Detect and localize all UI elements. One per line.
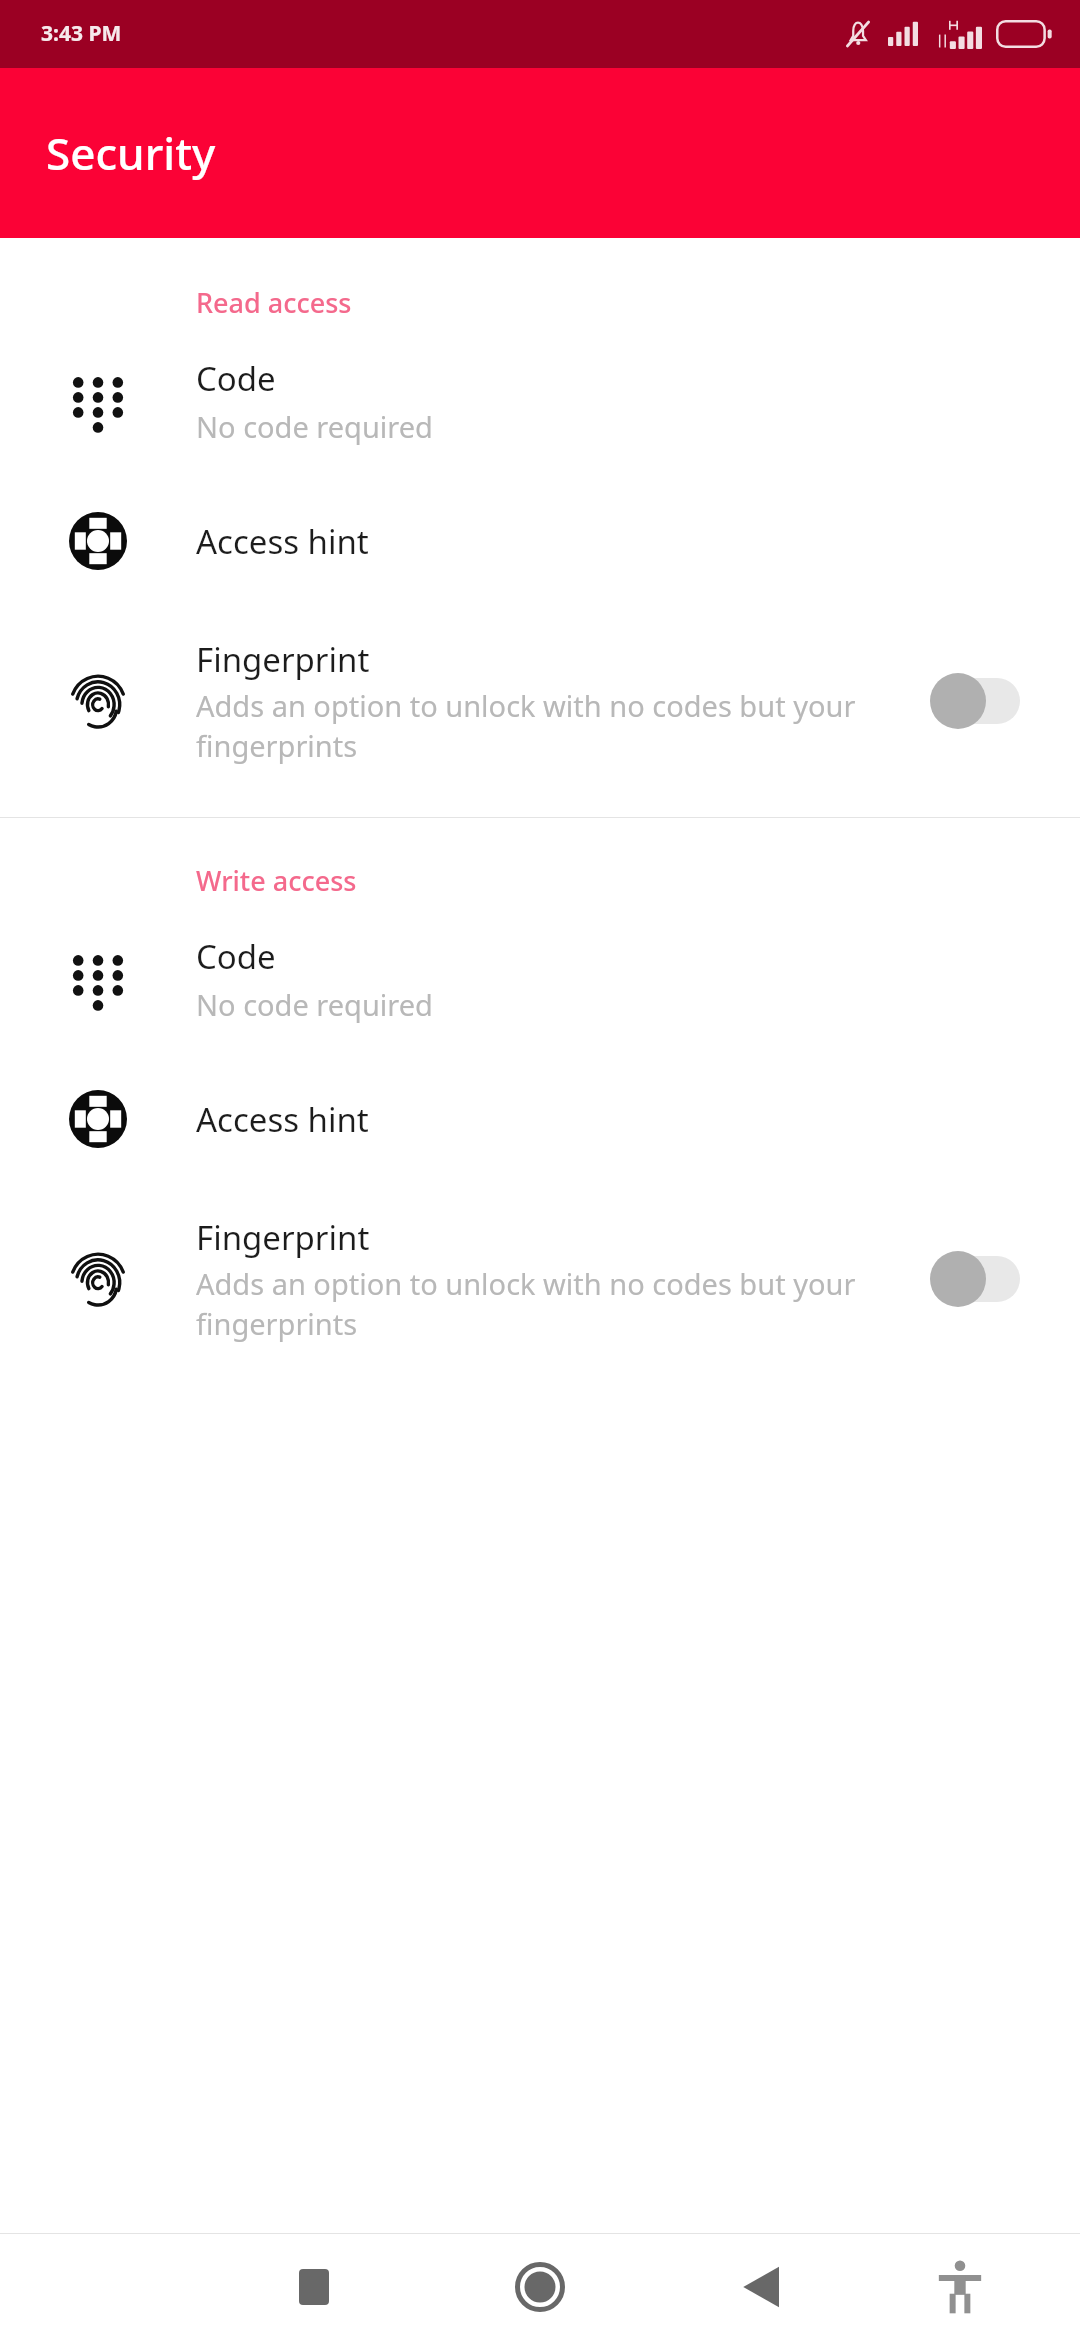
button[interactable]: Code [0,331,1080,471]
staticText: Fingerprint [196,1215,370,1260]
staticText: No code required [196,407,433,446]
staticText: Code [196,934,276,979]
staticText: Adds an option to unlock with no codes b… [196,1264,918,1344]
button[interactable]: Fingerprint [0,611,1080,791]
staticText: Code [196,356,276,401]
button[interactable]: Recent apps [258,2234,370,2340]
button[interactable]: Access hint [0,471,1080,611]
button[interactable]: Toggle fingerprint [930,1244,1022,1314]
staticText: 3:43 PM [41,19,122,48]
button[interactable]: Toggle fingerprint [930,666,1022,736]
staticText: Fingerprint [196,637,370,682]
button[interactable]: Back [704,2234,816,2340]
staticText: Read access [196,284,352,321]
button[interactable]: Code [0,909,1080,1049]
button[interactable]: Accessibility [904,2234,1016,2340]
button[interactable]: Home [484,2234,596,2340]
staticText: Access hint [196,519,369,564]
staticText: Access hint [196,1097,369,1142]
button[interactable]: Fingerprint [0,1189,1080,1369]
staticText: Write access [196,862,357,899]
staticText: Security [46,123,216,183]
button[interactable]: Access hint [0,1049,1080,1189]
staticText: Adds an option to unlock with no codes b… [196,686,918,766]
staticText: No code required [196,985,433,1024]
